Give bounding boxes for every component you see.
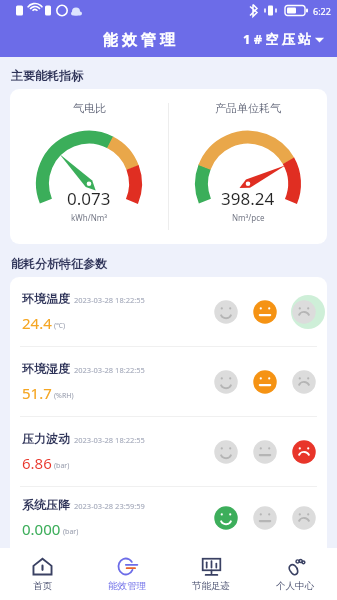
staticText: 0.073 [67, 187, 111, 210]
staticText: 气电比 [73, 101, 106, 115]
button[interactable]: 环境温度 [10, 277, 327, 346]
staticText: (bar) [63, 527, 79, 537]
staticText: (℃) [54, 321, 66, 331]
button[interactable]: Neutral [248, 365, 282, 399]
button[interactable]: 环境湿度 [10, 347, 327, 416]
staticText: 2023-03-28 18:22:55 [74, 365, 145, 375]
staticText: kWh/Nm³ [71, 212, 107, 223]
button[interactable]: Bad [287, 501, 321, 535]
staticText: 51.7 [22, 383, 52, 403]
staticText: 0.000 [22, 519, 61, 539]
staticText: 环境湿度 [22, 361, 70, 376]
staticText: 系统压降 [22, 497, 70, 512]
button[interactable]: Bad [287, 295, 321, 329]
staticText: (bar) [54, 461, 70, 471]
staticText: 6.86 [22, 453, 52, 473]
staticText: 首页 [33, 580, 52, 592]
staticText: 能耗分析特征参数 [11, 256, 107, 271]
staticText: 1 # 空 压 站 [243, 30, 312, 48]
staticText: (%RH) [54, 391, 74, 401]
button[interactable]: Bad [287, 365, 321, 399]
button[interactable]: 系统压降 [10, 487, 327, 548]
button[interactable]: Good [209, 435, 243, 469]
button[interactable]: 能效管理 [85, 548, 169, 600]
button[interactable]: 压力波动 [10, 417, 327, 486]
staticText: 能 效 管 理 [103, 29, 175, 49]
button[interactable]: 1 # 空 压 站 [239, 26, 329, 52]
staticText: 压力波动 [22, 431, 70, 446]
button[interactable]: Good [209, 365, 243, 399]
staticText: 398.24 [221, 187, 275, 210]
staticText: 2023-03-28 23:59:59 [74, 501, 145, 511]
staticText: 2023-03-28 18:22:55 [74, 295, 145, 305]
staticText: 节能足迹 [192, 580, 230, 592]
staticText: 2023-03-28 18:22:55 [74, 435, 145, 445]
button[interactable]: Neutral [248, 501, 282, 535]
button[interactable]: 节能足迹 [169, 548, 253, 600]
staticText: 主要能耗指标 [11, 68, 83, 83]
button[interactable]: Neutral [248, 295, 282, 329]
button[interactable]: Neutral [248, 435, 282, 469]
button[interactable]: Good [209, 501, 243, 535]
staticText: 6:22 [313, 5, 331, 17]
staticText: Nm³/pce [232, 212, 265, 223]
staticText: 产品单位耗气 [215, 101, 281, 115]
staticText: 个人中心 [276, 580, 314, 592]
button[interactable]: 个人中心 [253, 548, 337, 600]
staticText: 环境温度 [22, 291, 70, 306]
staticText: 24.4 [22, 313, 52, 333]
button[interactable]: Good [209, 295, 243, 329]
button[interactable]: 首页 [0, 548, 85, 600]
staticText: 能效管理 [108, 580, 146, 592]
button[interactable]: Bad [287, 435, 321, 469]
